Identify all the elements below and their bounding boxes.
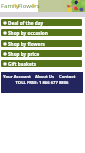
staticText: Flowers (18, 2, 40, 10)
staticText: Your Account (3, 74, 31, 80)
button[interactable]: Contact Us (57, 74, 83, 80)
button[interactable]: Your Account (1, 74, 33, 80)
staticText: Gift baskets (8, 61, 37, 67)
button[interactable]: Gift baskets (1, 60, 82, 67)
button[interactable]: Family Flowers home (0, 0, 38, 12)
staticText: Family (1, 2, 20, 10)
staticText: Contact Us (59, 74, 81, 80)
staticText: Shop by flowers (8, 41, 45, 47)
staticText: Shop by occasion (8, 30, 48, 36)
button[interactable]: Shop by flowers (1, 40, 82, 47)
staticText: TOLL FREE: 1 866 677 8806 (1, 80, 83, 86)
button[interactable]: Shop by occasion (1, 29, 82, 36)
staticText: Deal of the day (8, 20, 44, 26)
button[interactable]: About Us (33, 74, 57, 80)
staticText: Shop by price (8, 51, 40, 57)
staticText: About Us (35, 74, 55, 80)
button[interactable]: Shop by price (1, 50, 82, 57)
button[interactable]: Deal of the day (1, 19, 82, 26)
